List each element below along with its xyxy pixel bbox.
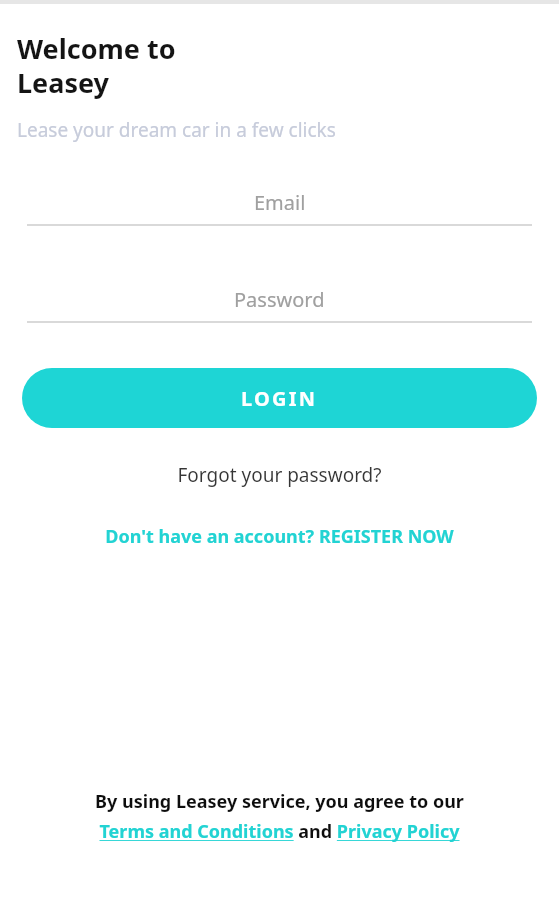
button[interactable]: Email [27,189,532,226]
staticText: Don't have an account? REGISTER NOW [105,524,454,549]
staticText: By using Leasey service, you agree to ou… [95,789,464,814]
button[interactable]: Forgot your password? [0,462,559,488]
button[interactable]: LOGIN [22,368,537,428]
button[interactable]: Password [27,286,532,323]
staticText: Forgot your password? [177,462,382,488]
button[interactable]: Don't have an account? REGISTER NOW [0,524,559,549]
staticText: Lease your dream car in a few clicks [17,117,336,143]
staticText: Terms and Conditions and Privacy Policy [99,819,460,844]
staticText: Welcome to Leasey [17,30,176,101]
staticText: LOGIN [241,385,318,412]
staticText: Email [254,189,306,216]
staticText: Password [234,286,325,313]
button[interactable]: By using Leasey service, you agree to ou… [12,789,547,844]
